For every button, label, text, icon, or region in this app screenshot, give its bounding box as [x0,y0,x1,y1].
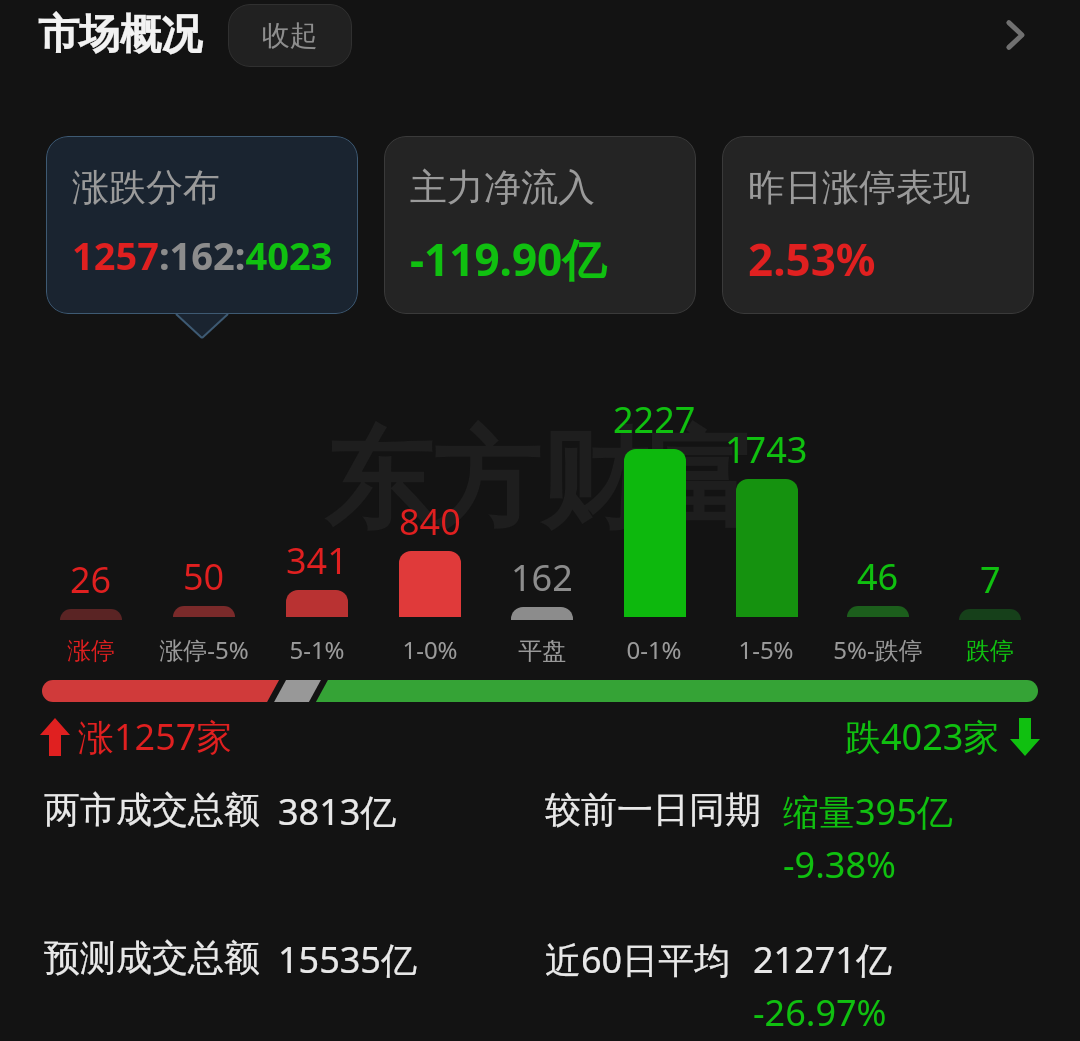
button[interactable]: 涨跌分布 [46,136,358,314]
staticText: 较前一日同期 [545,787,761,832]
staticText: -119.90亿 [410,229,607,289]
staticText: 0-1% [626,633,682,666]
button[interactable]: More [980,0,1050,70]
staticText: 跌停 [966,636,1014,666]
staticText: 7 [980,555,1001,604]
staticText: 46 [857,552,899,601]
staticText: 主力净流入 [410,164,595,211]
staticText: 缩量395亿 [783,787,953,836]
staticText: 跌4023家 [845,712,1000,761]
staticText: 1257:162:4023 [72,229,333,281]
staticText: 5%-跌停 [833,633,923,666]
button[interactable]: 主力净流入 [384,136,696,314]
staticText: 平盘 [518,636,566,666]
staticText: 预测成交总额 [44,935,260,980]
staticText: 5-1% [289,633,345,666]
staticText: 涨停 [67,636,115,666]
staticText: 两市成交总额 [44,787,260,832]
staticText: 162 [511,553,573,602]
staticText: 东方财富 [324,413,756,549]
staticText: 50 [183,552,225,601]
staticText: 21271亿 [753,935,892,984]
staticText: 收起 [262,18,318,53]
staticText: 近60日平均 [545,935,731,984]
staticText: 1-0% [402,633,458,666]
button[interactable]: 收起 [228,4,352,67]
staticText: 3813亿 [278,787,397,836]
staticText: 涨1257家 [78,712,233,761]
staticText: 26 [70,555,112,604]
staticText: 涨跌分布 [72,164,220,211]
staticText: 2227 [613,395,696,444]
staticText: 市场概况 [38,9,202,61]
staticText: 1743 [725,425,808,474]
staticText: 341 [286,536,348,585]
staticText: 昨日涨停表现 [748,164,970,211]
staticText: 15535亿 [278,935,417,984]
button[interactable]: 昨日涨停表现 [722,136,1034,314]
staticText: 840 [399,497,461,546]
staticText: -26.97% [753,988,887,1037]
staticText: -9.38% [783,840,896,889]
staticText: 涨停-5% [159,633,249,666]
staticText: 2.53% [748,229,876,289]
staticText: 1-5% [738,633,794,666]
